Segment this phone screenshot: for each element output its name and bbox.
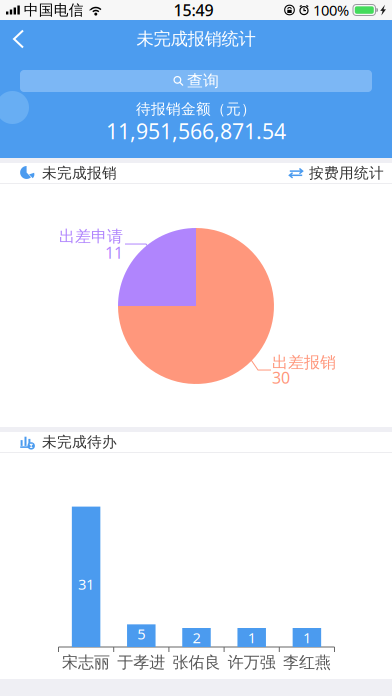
- button[interactable]: 按费用统计: [287, 163, 386, 183]
- staticText: 5: [137, 624, 145, 644]
- staticText: 15:49: [173, 0, 213, 21]
- staticText: 出差申请: [59, 227, 123, 246]
- staticText: 11: [105, 242, 123, 263]
- staticText: 宋志丽: [62, 653, 110, 672]
- staticText: 李红燕: [283, 653, 331, 672]
- staticText: 张佑良: [172, 653, 220, 672]
- staticText: 1: [303, 628, 311, 647]
- staticText: 查询: [187, 71, 219, 91]
- staticText: 待报销金额（元）: [136, 100, 256, 118]
- staticText: 2: [192, 628, 200, 647]
- staticText: 11,951,566,871.54: [106, 117, 286, 145]
- staticText: 1: [248, 628, 256, 647]
- staticText: 中国电信: [24, 1, 84, 19]
- staticText: 30: [272, 367, 290, 388]
- staticText: 31: [78, 574, 94, 594]
- staticText: 许万强: [228, 653, 276, 672]
- staticText: 未完成报销统计: [136, 28, 255, 50]
- staticText: 未完成待办: [42, 433, 117, 451]
- button[interactable]: Back: [0, 20, 44, 57]
- button[interactable]: 查询: [20, 70, 372, 92]
- staticText: 出差报销: [272, 353, 336, 372]
- staticText: 未完成报销: [42, 164, 117, 182]
- staticText: 100%: [313, 0, 349, 20]
- staticText: 于孝进: [117, 653, 165, 672]
- staticText: 按费用统计: [309, 164, 384, 182]
